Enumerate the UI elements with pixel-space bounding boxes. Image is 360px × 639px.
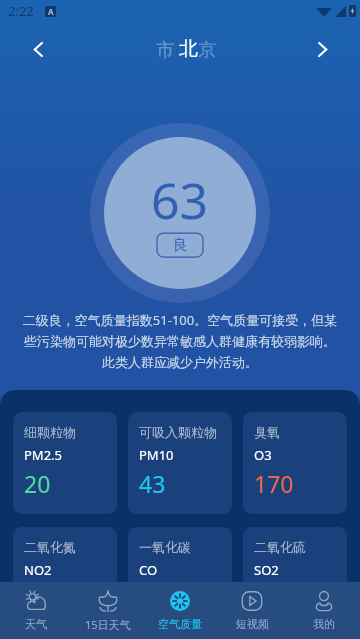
staticText: 北 [179,37,198,61]
staticText: CO [139,561,158,579]
button[interactable]: Next city [305,32,339,66]
staticText: 臭氧 [254,424,280,440]
button[interactable]: 空气质量 [144,582,216,639]
staticText: SO2 [254,561,279,579]
staticText: 20 [24,468,51,499]
staticText: 京 [198,38,217,61]
button[interactable]: 二氧化氮 [13,527,117,629]
staticText: 天气 [25,617,47,631]
button[interactable]: 细颗粒物 [13,412,117,514]
button[interactable]: 臭氧 [243,412,347,514]
button[interactable]: 15日天气 [72,582,144,639]
staticText: NO2 [24,561,52,579]
staticText: 细颗粒物 [24,424,76,440]
button[interactable]: Previous city [21,32,55,66]
staticText: 短视频 [236,617,269,631]
staticText: 32 [24,583,51,614]
staticText: 0.6 [139,583,172,614]
staticText: 2:22 [8,2,34,20]
staticText: 5 [254,583,268,614]
button[interactable]: 市 [100,36,260,62]
staticText: A [48,6,54,17]
staticText: 可吸入颗粒物 [139,424,217,440]
staticText: 我的 [313,617,335,631]
staticText: 市 [156,38,175,61]
staticText: PM2.5 [24,446,63,464]
staticText: 良 [173,236,188,255]
staticText: O3 [254,446,272,464]
staticText: 170 [254,468,294,499]
staticText: 二氧化氮 [24,539,76,555]
staticText: PM10 [139,446,174,464]
staticText: 63 [151,166,209,234]
button[interactable]: 天气 [0,582,72,639]
staticText: 43 [139,468,166,499]
staticText: 空气质量 [158,617,202,631]
staticText: 二级良，空气质量指数51-100。空气质量可接受，但某些污染物可能对极少数异常敏… [22,311,338,371]
staticText: 二氧化硫 [254,539,306,555]
staticText: 一氧化碳 [139,539,191,555]
button[interactable]: 可吸入颗粒物 [128,412,232,514]
button[interactable]: 一氧化碳 [128,527,232,629]
button[interactable]: 我的 [288,582,360,639]
button[interactable]: 短视频 [216,582,288,639]
staticText: 15日天气 [85,617,131,632]
button[interactable]: 二氧化硫 [243,527,347,629]
